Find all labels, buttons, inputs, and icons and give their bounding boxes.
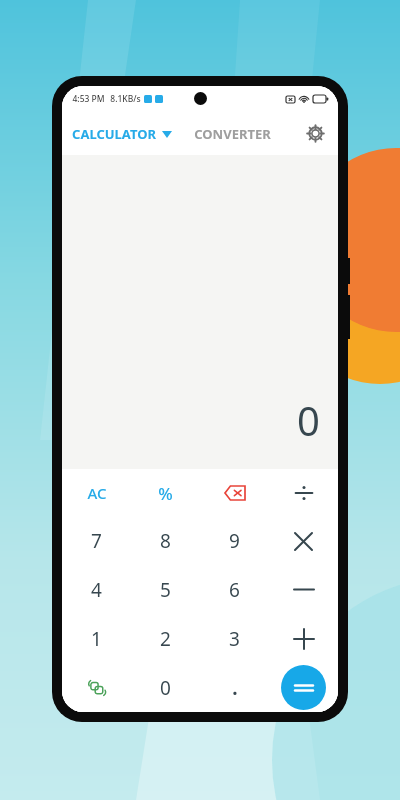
button[interactable]: Minus bbox=[269, 565, 338, 614]
button[interactable]: . bbox=[200, 663, 269, 712]
staticText: AC bbox=[87, 483, 107, 503]
button[interactable]: 7 bbox=[62, 517, 131, 565]
button[interactable]: AC bbox=[62, 469, 131, 517]
staticText: 4 bbox=[91, 577, 102, 603]
staticText: CALCULATOR bbox=[72, 125, 156, 143]
button[interactable]: 3 bbox=[200, 614, 269, 663]
staticText: 8 bbox=[160, 528, 171, 554]
button[interactable]: CONVERTER bbox=[186, 117, 279, 151]
button[interactable]: Plus bbox=[269, 614, 338, 663]
button[interactable]: 2 bbox=[131, 614, 200, 663]
staticText: 0 bbox=[297, 393, 320, 447]
staticText: 0 bbox=[160, 675, 171, 701]
button[interactable]: 8 bbox=[131, 517, 200, 565]
staticText: . bbox=[232, 675, 238, 701]
button[interactable]: 4 bbox=[62, 565, 131, 614]
staticText: 1 bbox=[91, 626, 102, 652]
button[interactable]: 5 bbox=[131, 565, 200, 614]
staticText: 6 bbox=[229, 577, 240, 603]
staticText: % bbox=[158, 482, 173, 505]
button[interactable]: 6 bbox=[200, 565, 269, 614]
button[interactable]: 0 bbox=[131, 663, 200, 712]
button[interactable]: Backspace bbox=[200, 469, 269, 517]
staticText: CONVERTER bbox=[194, 125, 271, 143]
button[interactable]: % bbox=[131, 469, 200, 517]
button[interactable]: CALCULATOR bbox=[62, 119, 178, 149]
staticText: 4:53 PM bbox=[72, 93, 105, 105]
button[interactable]: Settings bbox=[301, 119, 330, 148]
button[interactable]: Multiply bbox=[269, 517, 338, 565]
staticText: 2 bbox=[160, 626, 171, 652]
button[interactable]: 1 bbox=[62, 614, 131, 663]
staticText: 5 bbox=[160, 577, 171, 603]
staticText: 3 bbox=[229, 626, 240, 652]
button[interactable]: Equals bbox=[281, 665, 326, 710]
staticText: 7 bbox=[91, 528, 102, 554]
button[interactable]: History bbox=[62, 663, 131, 712]
button[interactable]: Divide bbox=[269, 469, 338, 517]
staticText: 9 bbox=[229, 528, 240, 554]
staticText: 8.1KB/s bbox=[110, 93, 141, 105]
button[interactable]: 9 bbox=[200, 517, 269, 565]
